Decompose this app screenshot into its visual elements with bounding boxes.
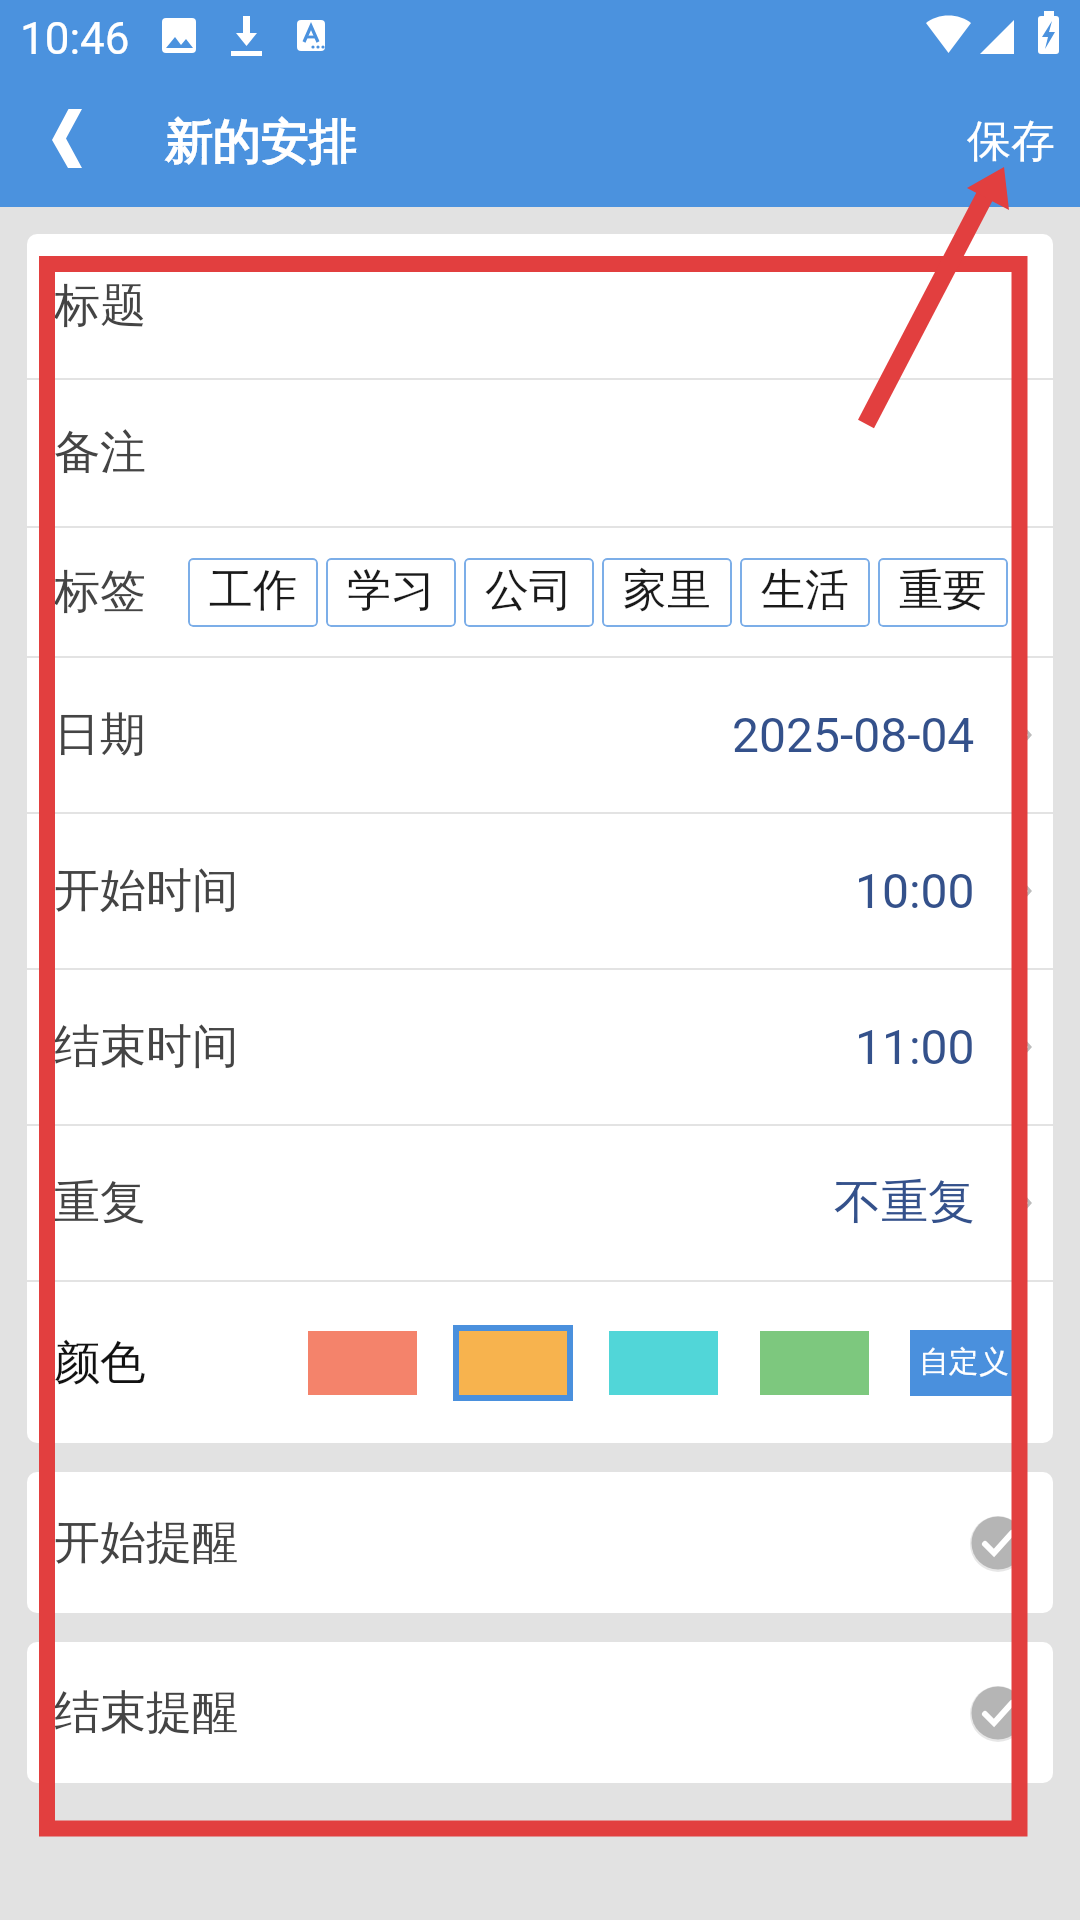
staticText: 自定义: [919, 1343, 1009, 1381]
staticText: 结束提醒: [54, 1684, 238, 1742]
button[interactable]: 备注: [27, 380, 1053, 526]
staticText: 标签: [54, 563, 146, 621]
button[interactable]: Back: [0, 80, 135, 207]
staticText: 颜色: [54, 1334, 146, 1392]
staticText: 学习: [347, 563, 435, 618]
staticText: 结束时间: [54, 1018, 238, 1076]
staticText: 生活: [761, 563, 849, 618]
button[interactable]: 开始时间: [27, 814, 1053, 968]
staticText: 重复: [54, 1174, 146, 1232]
button[interactable]: 结束提醒: [27, 1642, 1053, 1783]
staticText: 保存: [967, 114, 1055, 169]
staticText: 2025-08-04: [732, 707, 975, 763]
staticText: 不重复: [834, 1173, 975, 1232]
staticText: 工作: [209, 563, 297, 618]
button[interactable]: 开始提醒: [27, 1472, 1053, 1613]
button[interactable]: 生活: [740, 558, 870, 627]
button[interactable]: [453, 1325, 573, 1401]
staticText: 开始时间: [54, 862, 238, 920]
staticText: 公司: [485, 563, 573, 618]
button[interactable]: 自定义: [910, 1330, 1018, 1396]
staticText: 11:00: [855, 1019, 975, 1075]
staticText: 重要: [899, 563, 987, 618]
button[interactable]: 公司: [464, 558, 594, 627]
button[interactable]: 标题: [27, 234, 1053, 378]
button[interactable]: 工作: [188, 558, 318, 627]
button[interactable]: 重复: [27, 1126, 1053, 1280]
staticText: 家里: [623, 563, 711, 618]
staticText: 日期: [54, 706, 146, 764]
button[interactable]: 保存: [927, 80, 1080, 207]
button[interactable]: 日期: [27, 658, 1053, 812]
staticText: 标题: [54, 277, 146, 335]
button[interactable]: 学习: [326, 558, 456, 627]
button[interactable]: 家里: [602, 558, 732, 627]
staticText: 开始提醒: [54, 1514, 238, 1572]
staticText: 新的安排: [165, 112, 357, 172]
staticText: 10:46: [20, 13, 130, 65]
staticText: 10:00: [855, 863, 975, 919]
button[interactable]: 结束时间: [27, 970, 1053, 1124]
button[interactable]: 重要: [878, 558, 1008, 627]
staticText: 新的安排: [165, 112, 357, 172]
staticText: 备注: [54, 424, 146, 482]
